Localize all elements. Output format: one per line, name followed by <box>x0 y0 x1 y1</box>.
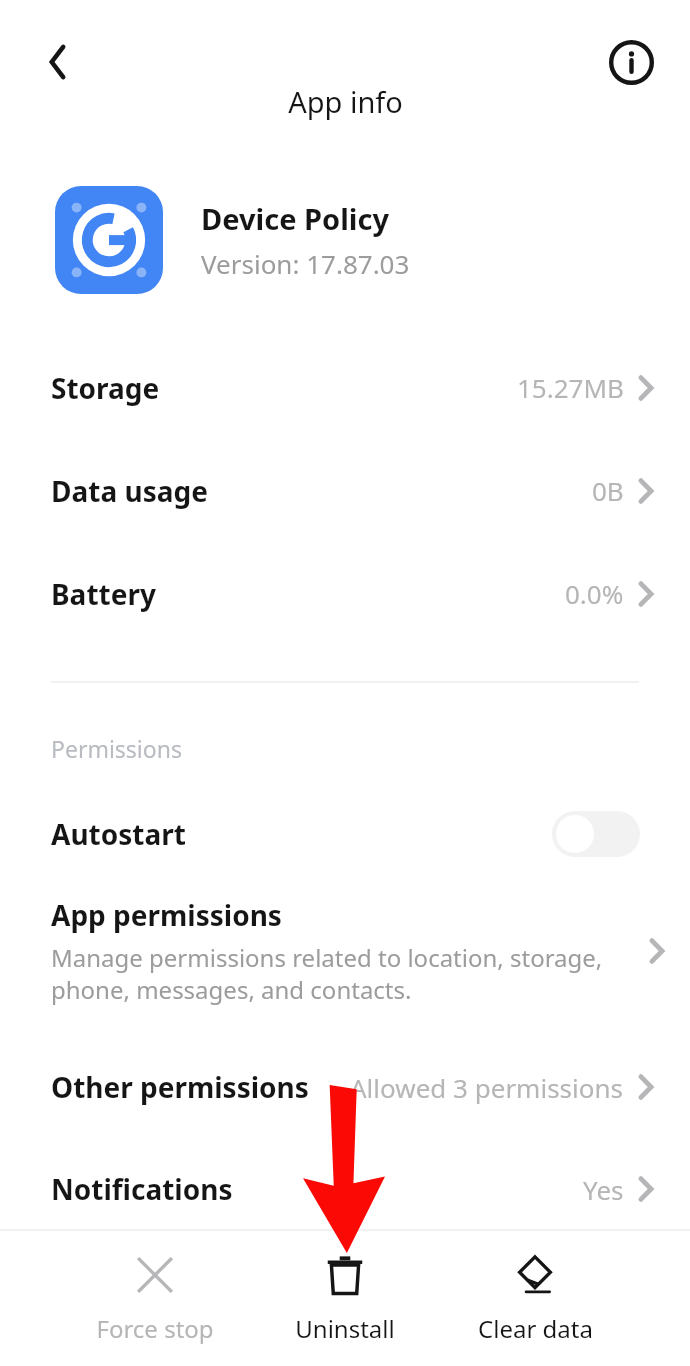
button[interactable]: Force stop <box>71 1246 239 1351</box>
staticText: 0B <box>592 473 624 508</box>
button[interactable]: Data usage <box>0 439 690 542</box>
button[interactable]: Storage <box>0 336 690 439</box>
staticText: 15.27MB <box>517 370 624 405</box>
staticText: Clear data <box>478 1312 593 1345</box>
button[interactable]: Battery <box>0 542 690 645</box>
button[interactable]: Clear data <box>451 1246 619 1351</box>
button[interactable]: Back <box>28 32 88 92</box>
button[interactable]: Other permissions <box>0 1036 690 1138</box>
staticText: Device Policy <box>201 199 389 238</box>
staticText: Uninstall <box>295 1312 395 1345</box>
staticText: App info <box>288 82 403 121</box>
staticText: Battery <box>51 575 156 613</box>
staticText: Permissions <box>51 733 182 764</box>
staticText: Manage permissions related to location, … <box>51 941 603 1006</box>
button[interactable]: Autostart <box>0 800 690 868</box>
button[interactable]: Notifications <box>0 1138 690 1240</box>
staticText: Allowed 3 permissions <box>350 1070 624 1105</box>
staticText: Version: 17.87.03 <box>201 246 410 281</box>
staticText: Yes <box>583 1172 624 1207</box>
button[interactable]: Uninstall <box>261 1246 429 1351</box>
staticText: Autostart <box>51 815 186 853</box>
staticText: Data usage <box>51 472 208 510</box>
button[interactable]: App details info <box>602 33 660 91</box>
staticText: App permissions <box>51 896 282 934</box>
staticText: Notifications <box>51 1170 233 1208</box>
button[interactable]: Device Policy <box>0 166 690 314</box>
staticText: 0.0% <box>565 576 624 611</box>
staticText: Force stop <box>96 1312 214 1345</box>
button[interactable]: Autostart toggle, off <box>552 811 640 857</box>
button[interactable]: App permissions <box>0 896 690 1006</box>
staticText: Storage <box>51 369 160 407</box>
staticText: Other permissions <box>51 1068 309 1106</box>
